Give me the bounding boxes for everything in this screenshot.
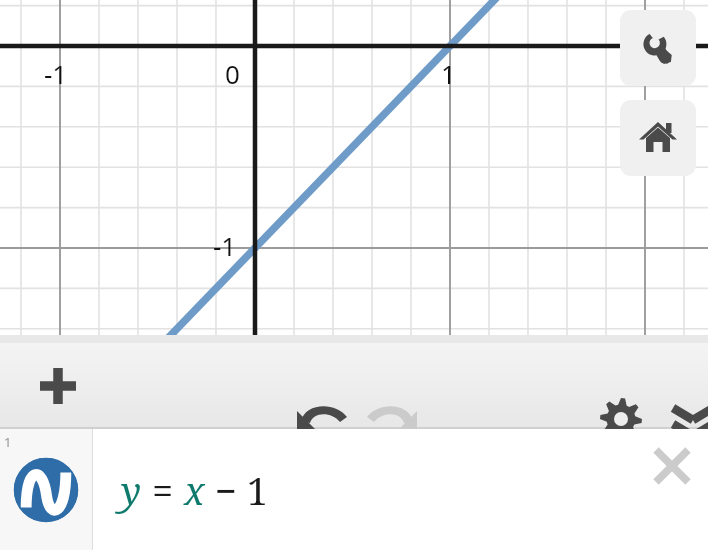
staticText: − 1 bbox=[205, 464, 269, 516]
button[interactable]: Undo bbox=[257, 353, 323, 419]
button[interactable]: Redo bbox=[325, 353, 391, 419]
button[interactable]: y bbox=[93, 429, 636, 550]
staticText: 0 bbox=[225, 56, 240, 91]
button[interactable]: Tools bbox=[620, 10, 696, 86]
button[interactable]: Settings bbox=[555, 353, 621, 419]
staticText: y bbox=[121, 464, 142, 516]
staticText: 1 bbox=[4, 433, 12, 451]
button[interactable]: Home bbox=[620, 100, 696, 176]
staticText: x bbox=[184, 464, 205, 516]
staticText: 1 bbox=[441, 56, 456, 91]
button[interactable]: Delete expression bbox=[636, 429, 708, 550]
staticText: = bbox=[142, 464, 184, 516]
button[interactable]: 1 bbox=[0, 429, 92, 550]
staticText: -1 bbox=[44, 56, 68, 91]
button[interactable]: Add expression bbox=[25, 353, 91, 419]
button[interactable]: Collapse bbox=[627, 353, 693, 419]
staticText: -1 bbox=[213, 228, 237, 263]
